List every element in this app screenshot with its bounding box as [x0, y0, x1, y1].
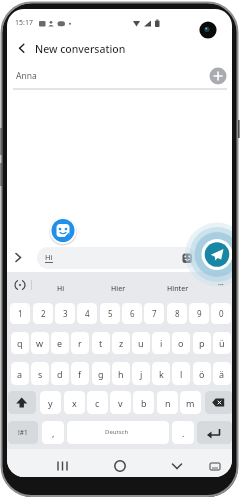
- button[interactable]: •••: [218, 282, 224, 289]
- staticText: t: [99, 337, 103, 349]
- staticText: ö: [199, 368, 205, 380]
- staticText: 15:17: [15, 18, 33, 28]
- button[interactable]: 0: [211, 303, 231, 324]
- staticText: 8: [175, 308, 180, 319]
- button[interactable]: ö: [193, 362, 211, 385]
- staticText: 4: [85, 308, 90, 319]
- staticText: Hi: [45, 252, 53, 262]
- button[interactable]: j: [132, 362, 150, 385]
- button[interactable]: t: [92, 332, 110, 354]
- staticText: i: [160, 337, 163, 349]
- button[interactable]: [166, 453, 188, 475]
- staticText: w: [36, 337, 44, 349]
- button[interactable]: [205, 391, 232, 414]
- staticText: ,: [52, 427, 55, 439]
- button[interactable]: u: [132, 332, 150, 354]
- staticText: e: [57, 337, 63, 349]
- button[interactable]: !#1: [8, 421, 38, 444]
- button[interactable]: [37, 247, 196, 269]
- staticText: d: [57, 368, 63, 380]
- button[interactable]: Hier: [111, 284, 126, 294]
- staticText: q: [17, 337, 23, 349]
- staticText: l: [180, 368, 183, 380]
- staticText: .: [182, 427, 185, 439]
- staticText: j: [140, 368, 143, 380]
- staticText: h: [118, 368, 124, 380]
- button[interactable]: [11, 40, 29, 58]
- button[interactable]: n: [157, 391, 178, 414]
- button[interactable]: [109, 453, 131, 475]
- staticText: p: [199, 337, 205, 349]
- button[interactable]: h: [112, 362, 130, 385]
- staticText: New conversation: [35, 42, 126, 56]
- button[interactable]: 4: [77, 303, 97, 324]
- staticText: ä: [219, 368, 225, 380]
- button[interactable]: p: [193, 332, 211, 354]
- button[interactable]: 7: [144, 303, 164, 324]
- staticText: z: [119, 337, 124, 349]
- staticText: b: [141, 397, 147, 409]
- button[interactable]: g: [92, 362, 110, 385]
- button[interactable]: i: [152, 332, 170, 354]
- button[interactable]: o: [172, 332, 190, 354]
- button[interactable]: l: [172, 362, 190, 385]
- button[interactable]: 6: [122, 303, 142, 324]
- button[interactable]: [67, 421, 169, 444]
- staticText: y: [48, 397, 53, 409]
- button[interactable]: [201, 238, 232, 270]
- button[interactable]: c: [87, 391, 108, 414]
- button[interactable]: q: [11, 332, 29, 354]
- button[interactable]: s: [31, 362, 49, 385]
- button[interactable]: [8, 391, 36, 414]
- staticText: r: [78, 337, 82, 349]
- staticText: a: [17, 368, 23, 380]
- staticText: m: [186, 397, 195, 409]
- staticText: 0: [219, 308, 224, 319]
- staticText: 2: [41, 308, 46, 319]
- button[interactable]: ä: [213, 362, 231, 385]
- button[interactable]: e: [51, 332, 69, 354]
- button[interactable]: m: [180, 391, 201, 414]
- button[interactable]: .: [172, 421, 194, 444]
- button[interactable]: 5: [100, 303, 120, 324]
- button[interactable]: a: [11, 362, 29, 385]
- staticText: n: [165, 397, 171, 409]
- button[interactable]: k: [152, 362, 170, 385]
- button[interactable]: d: [51, 362, 69, 385]
- staticText: 1: [18, 308, 23, 319]
- staticText: f: [78, 368, 82, 380]
- button[interactable]: z: [112, 332, 130, 354]
- button[interactable]: 1: [10, 303, 30, 324]
- staticText: 9: [197, 308, 202, 319]
- button[interactable]: 3: [55, 303, 75, 324]
- button[interactable]: f: [71, 362, 89, 385]
- button[interactable]: x: [64, 391, 85, 414]
- button[interactable]: [51, 453, 73, 475]
- button[interactable]: b: [133, 391, 154, 414]
- staticText: 3: [63, 308, 68, 319]
- button[interactable]: Hinter: [167, 284, 189, 294]
- staticText: 5: [108, 308, 113, 319]
- button[interactable]: r: [71, 332, 89, 354]
- button[interactable]: y: [40, 391, 61, 414]
- staticText: g: [98, 368, 104, 380]
- button[interactable]: 8: [167, 303, 187, 324]
- button[interactable]: w: [31, 332, 49, 354]
- staticText: u: [138, 337, 144, 349]
- button[interactable]: ,: [42, 421, 64, 444]
- staticText: 6: [130, 308, 135, 319]
- button[interactable]: Hi: [57, 284, 65, 294]
- staticText: 7: [152, 308, 157, 319]
- button[interactable]: ü: [213, 332, 231, 354]
- staticText: v: [118, 397, 123, 409]
- button[interactable]: [207, 65, 229, 87]
- staticText: !#1: [18, 428, 28, 437]
- staticText: x: [72, 397, 77, 409]
- button[interactable]: 9: [189, 303, 209, 324]
- staticText: c: [95, 397, 100, 409]
- button[interactable]: [49, 216, 77, 244]
- button[interactable]: v: [110, 391, 131, 414]
- button[interactable]: [197, 421, 232, 444]
- staticText: s: [38, 368, 43, 380]
- button[interactable]: 2: [33, 303, 53, 324]
